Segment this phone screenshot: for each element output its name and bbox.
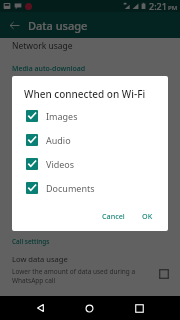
staticText: Cancel [102, 211, 125, 221]
button[interactable]: Images [12, 104, 168, 128]
staticText: Low data usage [12, 254, 68, 264]
staticText: Documents [46, 182, 95, 194]
button[interactable]: Low data usage [0, 250, 180, 290]
button[interactable]: Videos [12, 152, 168, 176]
staticText: Images [46, 110, 78, 122]
button[interactable]: Audio [12, 128, 168, 152]
staticText: Data usage [28, 18, 88, 33]
staticText: OK [142, 211, 153, 221]
button[interactable]: Back [8, 19, 20, 31]
button[interactable]: Back [24, 296, 56, 320]
button[interactable]: Cancel [97, 207, 130, 225]
staticText: 2:21 [149, 0, 167, 12]
staticText: When connected on Wi-Fi [24, 87, 146, 101]
button[interactable]: OK [137, 207, 158, 225]
staticText: Audio [46, 134, 71, 146]
staticText: Network usage [12, 40, 73, 52]
button[interactable]: Recent apps [123, 296, 156, 320]
button[interactable]: Documents [12, 176, 168, 200]
staticText: PM [168, 4, 178, 12]
staticText: Media auto-download [12, 64, 86, 74]
staticText: Videos [46, 158, 75, 170]
staticText: Lower the amount of data used during a W… [12, 267, 153, 285]
button[interactable]: Home [73, 296, 105, 320]
staticText: Call settings [12, 237, 50, 246]
